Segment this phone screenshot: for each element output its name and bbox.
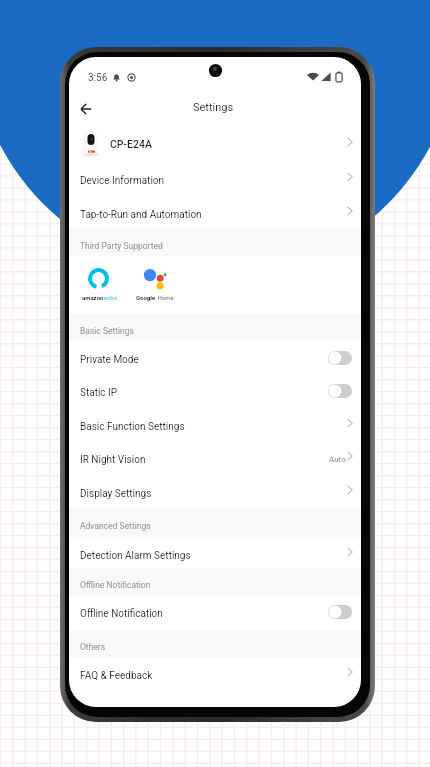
button[interactable]: Basic Function Settings bbox=[69, 408, 361, 442]
staticText: Basic Function Settings bbox=[80, 421, 185, 433]
staticText: Basic Settings bbox=[80, 326, 134, 336]
staticText: Static IP bbox=[80, 387, 118, 399]
staticText: 3:56 bbox=[88, 72, 108, 84]
button[interactable]: CP-E24A bbox=[69, 125, 361, 162]
button[interactable]: Detection Alarm Settings bbox=[69, 538, 361, 569]
staticText: CP-E24A bbox=[110, 138, 152, 150]
button[interactable]: amazon bbox=[80, 265, 130, 305]
staticText: Offline Notification bbox=[80, 608, 163, 620]
staticText: Others bbox=[80, 642, 106, 652]
button[interactable]: Private Mode bbox=[69, 341, 361, 375]
staticText: IR Night Vision bbox=[80, 454, 146, 466]
staticText: echo bbox=[104, 294, 118, 301]
staticText: Tap-to-Run and Automation bbox=[80, 209, 202, 221]
staticText: Advanced Settings bbox=[80, 521, 151, 531]
button[interactable]: IR Night Vision bbox=[69, 441, 361, 475]
staticText: Offline Notification bbox=[80, 580, 151, 590]
staticText: FAQ & Feedback bbox=[80, 670, 153, 682]
staticText: Third Party Supported bbox=[80, 241, 163, 251]
button[interactable]: Offline Notification bbox=[69, 595, 361, 629]
button[interactable]: FAQ & Feedback bbox=[69, 657, 361, 691]
staticText: Device Information bbox=[80, 175, 165, 187]
staticText: Detection Alarm Settings bbox=[80, 550, 191, 562]
button[interactable]: Static IP bbox=[69, 374, 361, 408]
staticText: Auto bbox=[329, 455, 346, 464]
staticText: Google bbox=[136, 294, 156, 301]
button[interactable]: Tap-to-Run and Automation bbox=[69, 196, 361, 230]
button[interactable]: Device Information bbox=[69, 162, 361, 196]
button[interactable]: Back bbox=[70, 93, 102, 125]
staticText: Private Mode bbox=[80, 354, 139, 366]
button[interactable]: Google bbox=[135, 264, 185, 304]
staticText: amazon bbox=[82, 294, 104, 301]
staticText: Settings bbox=[193, 101, 234, 114]
staticText: Home bbox=[156, 294, 174, 301]
staticText: Display Settings bbox=[80, 488, 152, 500]
button[interactable]: Display Settings bbox=[69, 475, 361, 509]
